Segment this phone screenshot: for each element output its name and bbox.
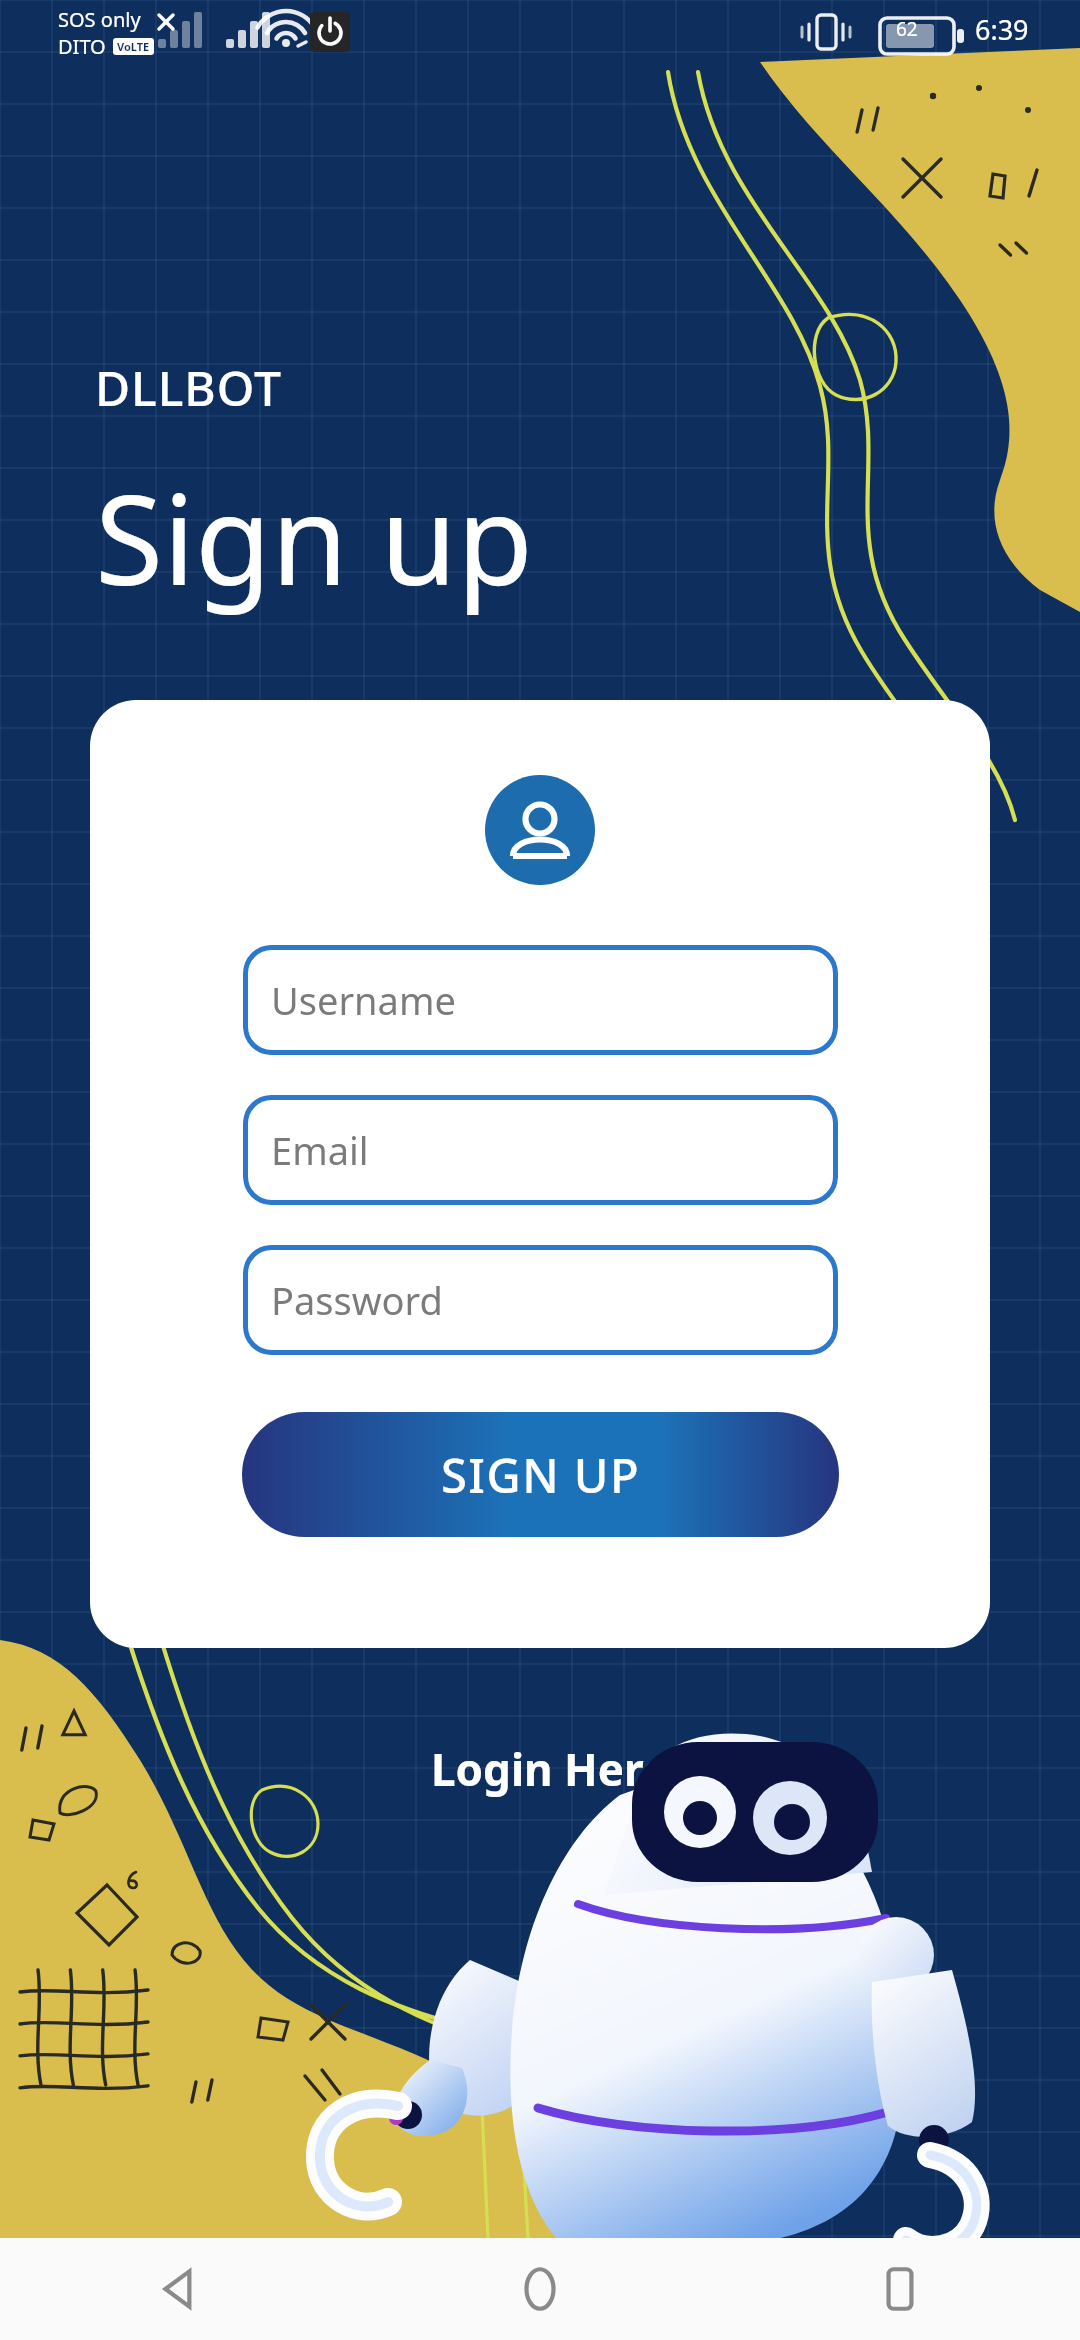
staticText: DITO (58, 33, 106, 60)
button[interactable]: Username (243, 945, 838, 1055)
button[interactable]: Login Here (425, 1733, 676, 1805)
staticText: VoLTE (117, 39, 150, 54)
button[interactable]: Password (243, 1245, 838, 1355)
staticText: Email (271, 1124, 369, 1176)
staticText: DLLBOT (95, 355, 282, 420)
button[interactable]: Email (243, 1095, 838, 1205)
button[interactable]: SIGN UP (242, 1412, 839, 1537)
staticText: Username (271, 974, 456, 1026)
other: Profile avatar (485, 775, 595, 885)
button[interactable]: Recent apps (720, 2238, 1080, 2340)
staticText: 62 (896, 16, 918, 42)
staticText: Login Here (431, 1739, 670, 1799)
button[interactable]: Back (0, 2238, 360, 2340)
staticText: Password (271, 1274, 443, 1326)
staticText: Sign up (95, 452, 534, 621)
staticText: SOS only (58, 6, 141, 33)
staticText: 6:39 (975, 11, 1029, 48)
staticText: SIGN UP (441, 1443, 641, 1507)
button[interactable]: Home (360, 2238, 720, 2340)
